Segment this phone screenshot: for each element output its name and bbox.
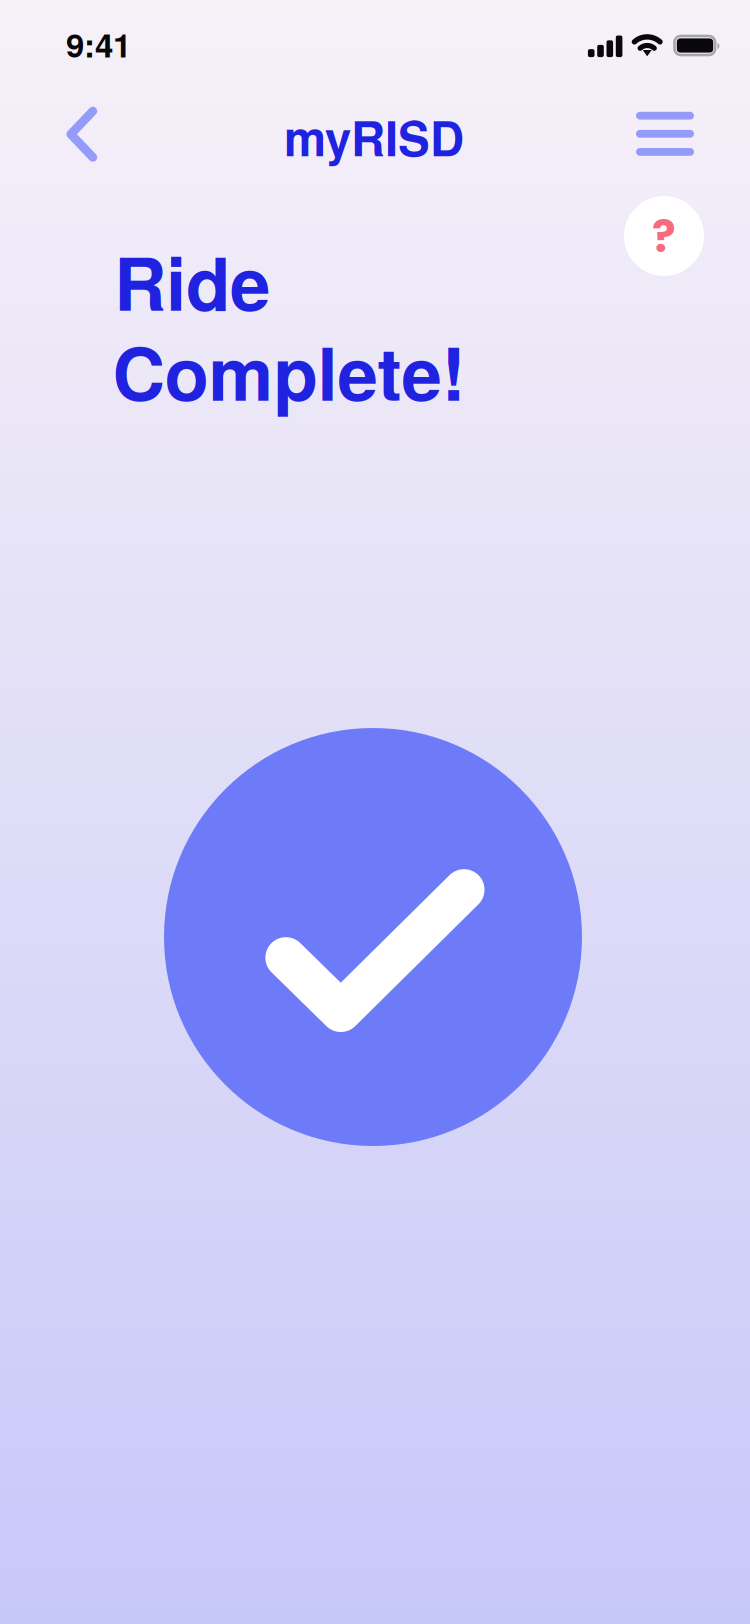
staticText: ?	[652, 206, 676, 267]
button[interactable]: Help	[624, 196, 704, 276]
staticText: Ride	[114, 229, 270, 333]
staticText: myRISD	[284, 103, 464, 171]
button[interactable]: Menu	[622, 91, 708, 177]
staticText: 9:41	[66, 20, 131, 68]
staticText: Complete!	[112, 319, 465, 423]
button[interactable]: Back	[39, 91, 125, 177]
